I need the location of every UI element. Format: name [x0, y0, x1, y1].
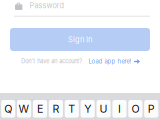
button[interactable]: I	[112, 100, 127, 118]
staticText: E	[37, 102, 43, 115]
staticText: Load app here!	[88, 58, 131, 65]
button[interactable]: E	[33, 100, 47, 118]
staticText: U	[100, 102, 108, 115]
button[interactable]: Sign In	[10, 28, 150, 51]
button[interactable]: U	[96, 100, 111, 118]
staticText: Y	[84, 102, 91, 115]
staticText: Password	[29, 1, 63, 10]
button[interactable]: Password	[15, 0, 151, 12]
button[interactable]: R	[49, 100, 63, 118]
staticText: W	[19, 102, 30, 115]
staticText: Sign In	[68, 35, 92, 44]
staticText: T	[68, 102, 75, 115]
staticText: R	[52, 102, 59, 115]
staticText: Don't have an account?	[21, 58, 82, 65]
staticText: Q	[4, 102, 12, 115]
staticText: I	[118, 102, 121, 115]
button[interactable]: Q	[1, 100, 15, 118]
button[interactable]: P	[144, 100, 158, 118]
staticText: O	[131, 102, 139, 115]
button[interactable]: T	[65, 100, 79, 118]
button[interactable]: Load app here!	[88, 58, 140, 65]
button[interactable]: O	[128, 100, 142, 118]
button[interactable]: W	[17, 100, 31, 118]
staticText: P	[148, 102, 155, 115]
button[interactable]: Y	[81, 100, 95, 118]
